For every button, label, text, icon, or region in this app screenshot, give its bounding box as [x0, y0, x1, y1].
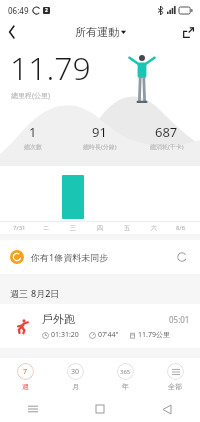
staticText: 戶外跑: [42, 312, 75, 326]
button[interactable]: 你有1條資料未同步: [0, 240, 200, 274]
staticText: 8/6: [176, 224, 186, 232]
staticText: 8月2日: [31, 287, 60, 299]
button[interactable]: Home: [66, 396, 133, 422]
staticText: 週三: [10, 288, 28, 299]
button[interactable]: Share: [176, 20, 200, 44]
staticText: 91: [92, 123, 107, 141]
button[interactable]: 戶外跑: [0, 304, 200, 348]
button[interactable]: 7: [0, 358, 50, 396]
staticText: 7: [23, 367, 28, 377]
staticText: 年: [122, 382, 129, 391]
button[interactable]: Recents: [0, 396, 66, 422]
staticText: 總時長(分鐘): [83, 143, 117, 151]
staticText: 全部: [168, 382, 182, 391]
staticText: 07'44": [98, 330, 119, 340]
staticText: 總消耗(千卡): [150, 143, 184, 151]
staticText: 365: [120, 368, 131, 376]
staticText: 11.79: [10, 46, 91, 90]
staticText: 1: [29, 123, 37, 141]
staticText: 11.79公里: [138, 330, 170, 340]
staticText: 三: [70, 224, 76, 232]
staticText: 30: [71, 367, 80, 377]
button[interactable]: 365: [100, 358, 150, 396]
staticText: 總次數: [24, 143, 42, 151]
staticText: 06:49: [8, 5, 29, 16]
button[interactable]: 全部: [150, 358, 200, 396]
staticText: 總里程(公里): [11, 91, 51, 101]
staticText: 05:01: [169, 314, 190, 325]
staticText: 687: [155, 123, 178, 141]
staticText: 月: [72, 382, 79, 391]
staticText: 所有運動: [75, 25, 119, 39]
staticText: 四: [97, 224, 103, 232]
staticText: 7/31: [13, 224, 26, 232]
button[interactable]: Back: [133, 396, 200, 422]
staticText: 01:31:20: [51, 330, 79, 340]
staticText: 你有1條資料未同步: [31, 251, 109, 263]
staticText: 週: [22, 382, 29, 391]
staticText: 六: [151, 224, 157, 232]
button[interactable]: Sync: [174, 249, 190, 265]
button[interactable]: 所有運動: [75, 25, 126, 39]
staticText: 五: [124, 224, 130, 232]
staticText: 2: [45, 7, 48, 14]
button[interactable]: Back: [0, 20, 24, 44]
staticText: 二: [43, 224, 49, 232]
button[interactable]: 30: [50, 358, 100, 396]
